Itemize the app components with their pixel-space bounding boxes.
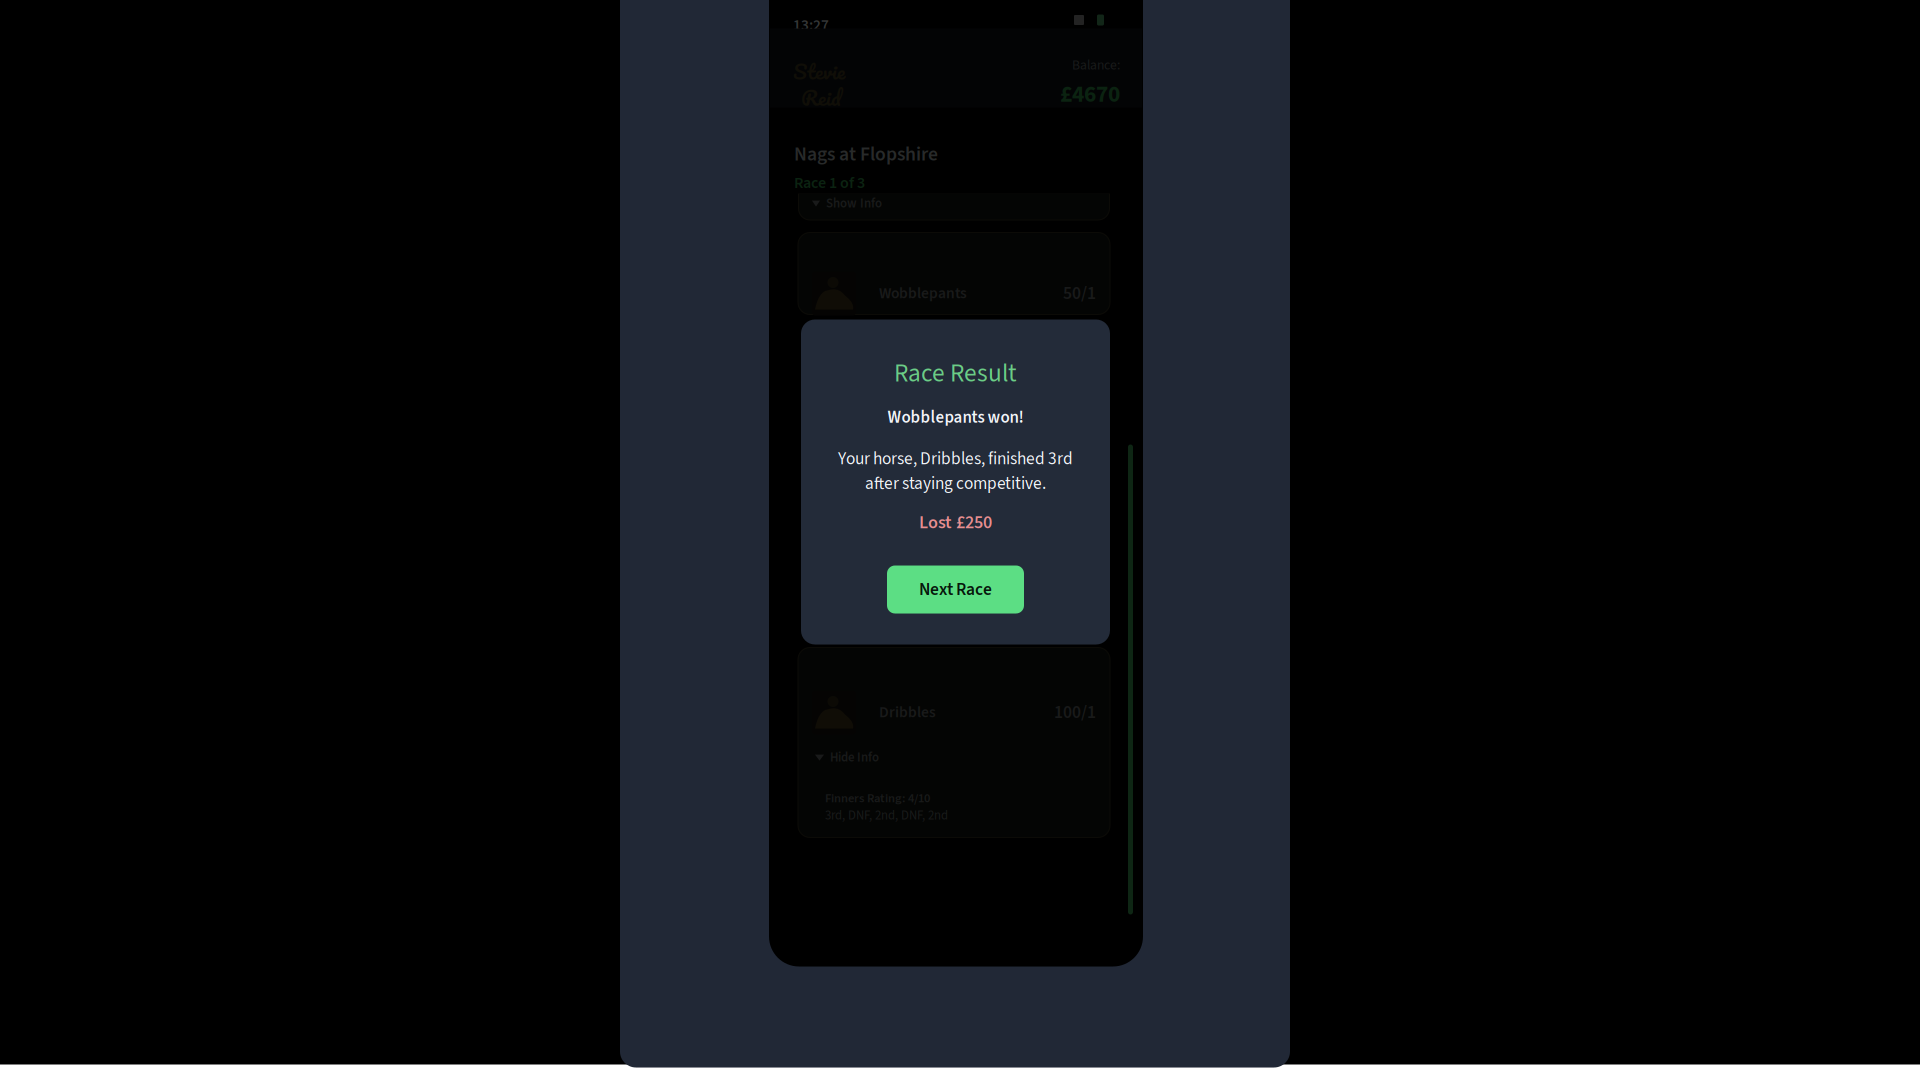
staticText: £4670 bbox=[1060, 78, 1120, 111]
staticText: Stevie bbox=[793, 53, 845, 89]
staticText: Dribbles bbox=[879, 701, 936, 723]
staticText: 50/1 bbox=[1063, 281, 1096, 306]
button[interactable]: Wobblepants bbox=[798, 232, 1110, 314]
staticText: Reid bbox=[801, 80, 841, 115]
staticText: 3rd, DNF, 2nd, DNF, 2nd bbox=[825, 806, 948, 825]
staticText: Hide Info bbox=[830, 748, 879, 767]
staticText: after staying competitive. bbox=[865, 471, 1046, 496]
staticText: Balance: bbox=[1072, 55, 1120, 75]
staticText: Lost £250 bbox=[919, 510, 992, 535]
staticText: Nags at Flopshire bbox=[794, 140, 938, 168]
staticText: Next Race bbox=[919, 577, 992, 602]
staticText: Race 1 of 3 bbox=[794, 171, 865, 194]
button[interactable]: Hide Info bbox=[812, 745, 882, 770]
button[interactable]: Next Race bbox=[887, 565, 1024, 613]
staticText: 100/1 bbox=[1054, 700, 1096, 725]
staticText: Your horse, Dribbles, finished 3rd bbox=[838, 446, 1073, 471]
staticText: Wobblepants bbox=[879, 282, 967, 304]
staticText: Race Result bbox=[894, 355, 1017, 392]
staticText: Show Info bbox=[826, 194, 882, 213]
staticText: 13:27 bbox=[793, 14, 829, 36]
staticText: Wobblepants won! bbox=[887, 405, 1023, 429]
staticText: Finners Rating: 4/10 bbox=[825, 789, 930, 807]
